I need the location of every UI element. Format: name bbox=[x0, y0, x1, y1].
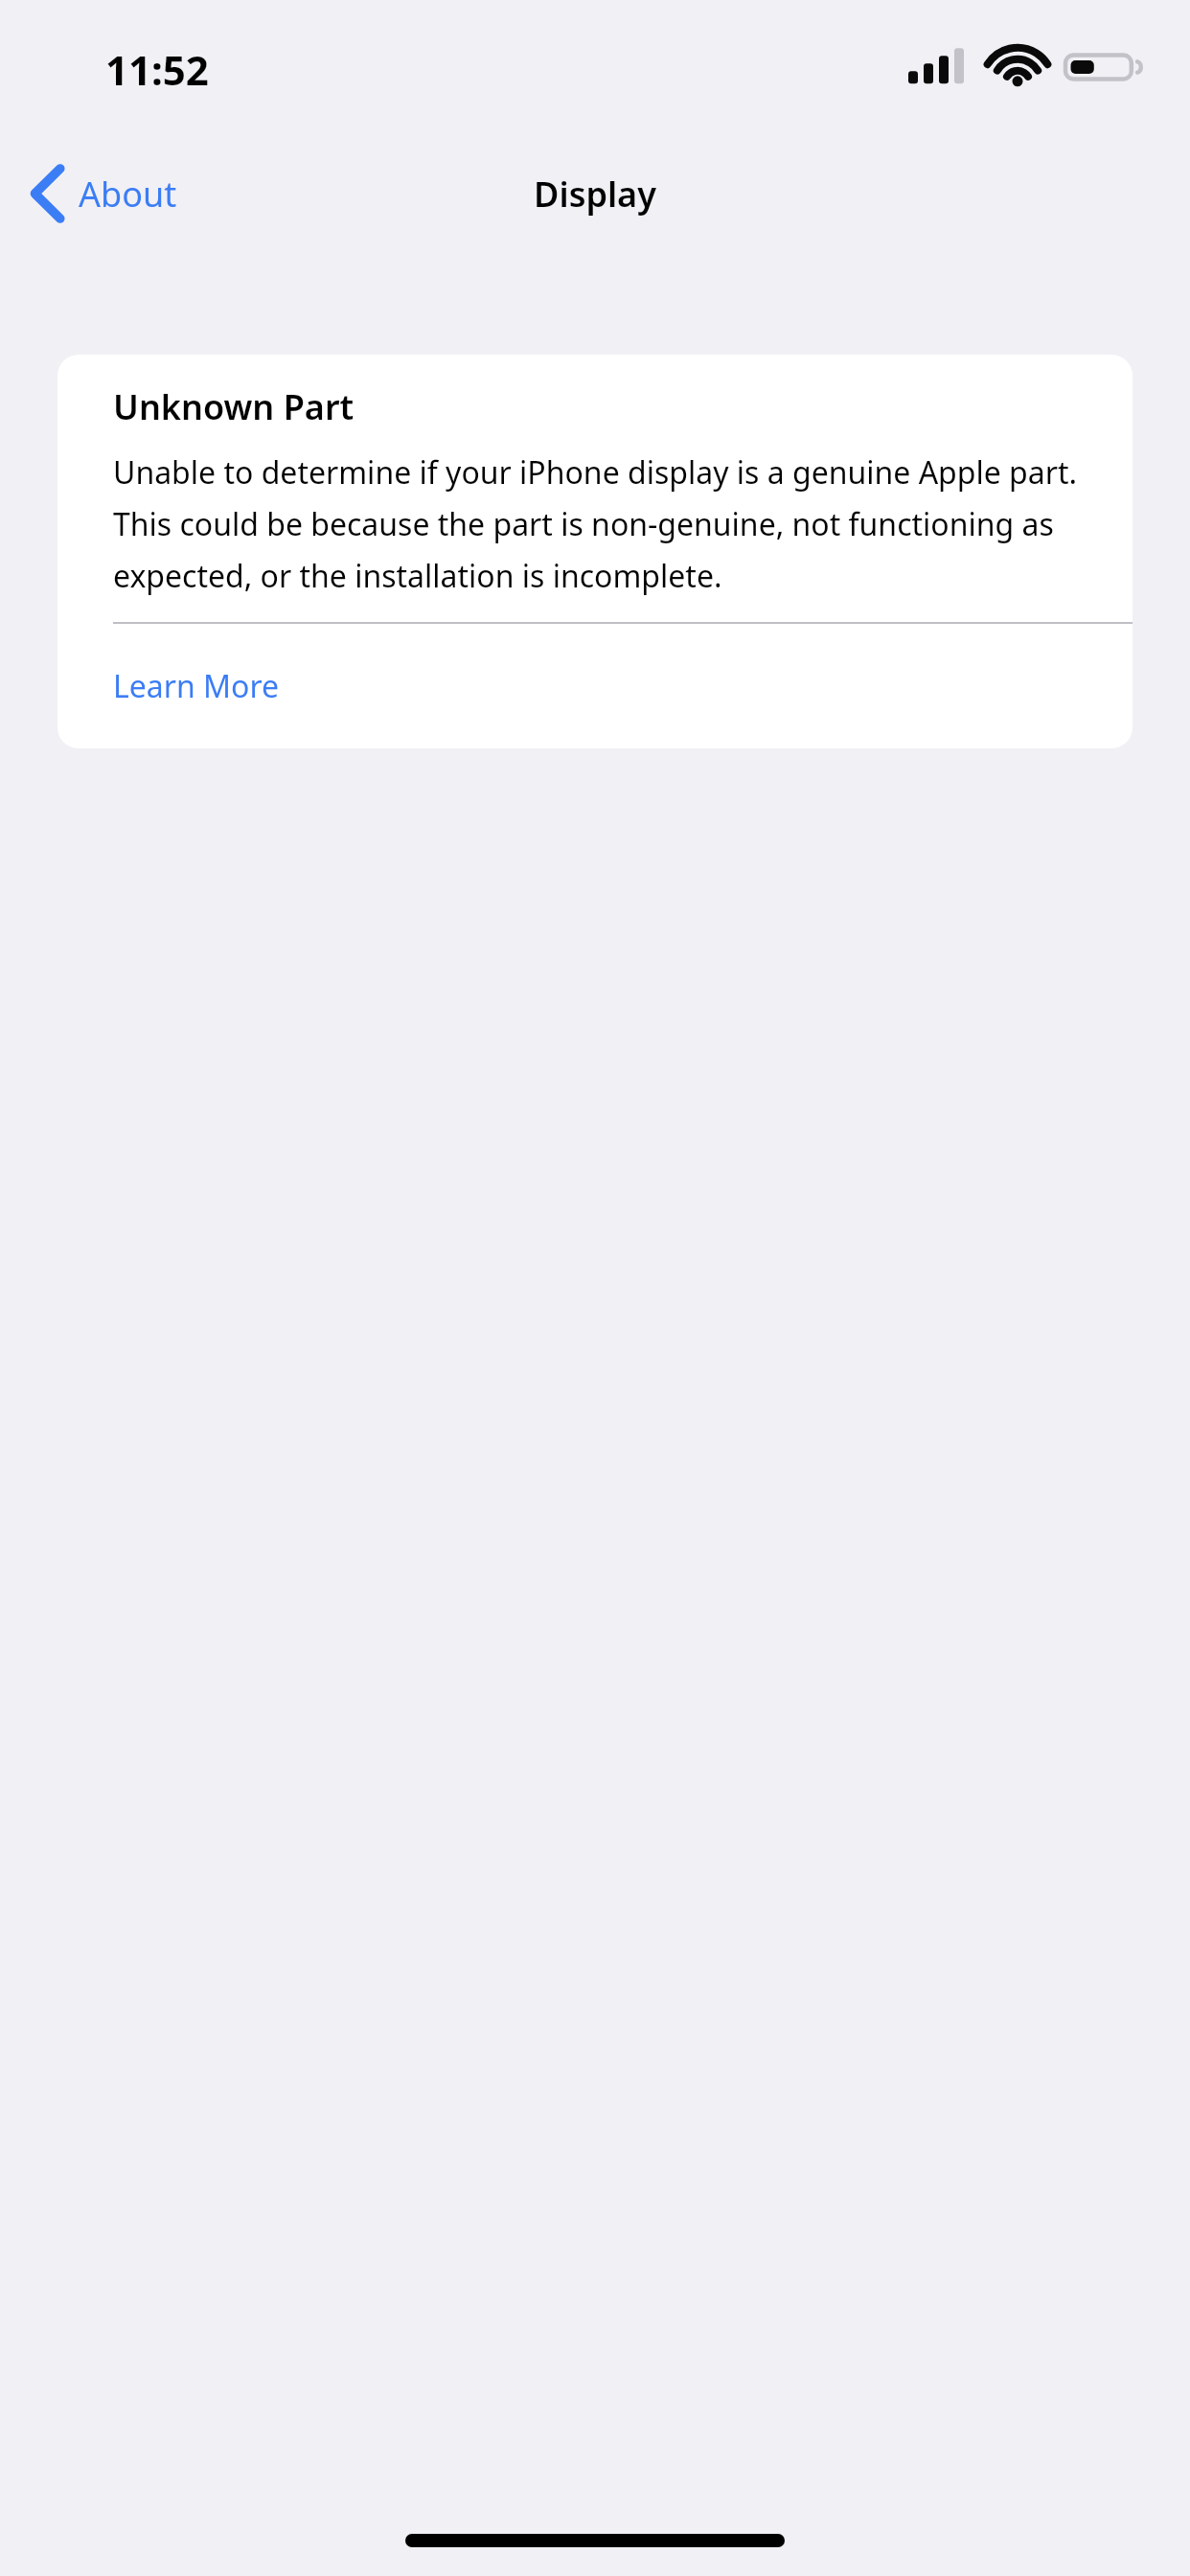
staticText: 11:52 bbox=[105, 42, 209, 97]
staticText: Unknown Part bbox=[113, 383, 355, 430]
staticText: Learn More bbox=[113, 665, 280, 707]
staticText: About bbox=[79, 171, 177, 218]
button[interactable]: Learn More bbox=[57, 624, 1133, 748]
staticText: Unable to determine if your iPhone displ… bbox=[113, 451, 1081, 597]
button[interactable]: Back to About bbox=[21, 153, 193, 234]
staticText: Display bbox=[534, 171, 656, 218]
other: Back to About bbox=[29, 164, 67, 223]
